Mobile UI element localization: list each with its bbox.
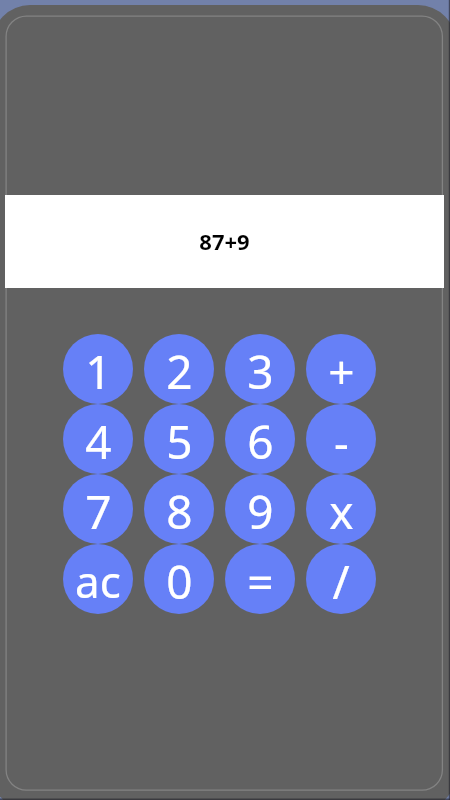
button[interactable]: 9 [225, 474, 295, 544]
staticText: 7 [85, 480, 112, 543]
button[interactable]: 0 [144, 544, 214, 614]
button[interactable]: 1 [63, 334, 133, 404]
staticText: 6 [247, 410, 274, 473]
staticText: = [247, 550, 274, 613]
staticText: 8 [166, 480, 193, 543]
button[interactable]: 8 [144, 474, 214, 544]
staticText: + [328, 340, 355, 403]
staticText: 9 [247, 480, 274, 543]
staticText: 3 [247, 340, 274, 403]
button[interactable]: 3 [225, 334, 295, 404]
staticText: 4 [85, 410, 112, 473]
staticText: 87+9 [199, 226, 250, 256]
staticText: 0 [166, 550, 193, 613]
button[interactable]: 4 [63, 404, 133, 474]
staticText: ac [75, 551, 121, 611]
button[interactable]: / [306, 544, 376, 614]
staticText: 1 [85, 340, 112, 403]
staticText: 5 [166, 410, 193, 473]
button[interactable]: - [306, 404, 376, 474]
button[interactable]: ac [63, 544, 133, 614]
button[interactable]: 5 [144, 404, 214, 474]
staticText: - [334, 410, 349, 473]
button[interactable]: x [306, 474, 376, 544]
staticText: x [329, 480, 354, 543]
button[interactable]: 2 [144, 334, 214, 404]
button[interactable]: 6 [225, 404, 295, 474]
button[interactable]: = [225, 544, 295, 614]
button[interactable]: 7 [63, 474, 133, 544]
staticText: 2 [166, 340, 193, 403]
button[interactable]: + [306, 334, 376, 404]
staticText: / [332, 550, 350, 613]
